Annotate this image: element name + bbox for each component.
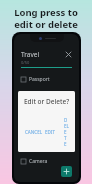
- button[interactable]: Add item: [61, 166, 72, 177]
- staticText: Edit or Delete?: [24, 97, 70, 106]
- staticText: DELETE: [64, 117, 69, 147]
- staticText: Long press to edit or delete: [0, 6, 92, 31]
- button[interactable]: Camera: [14, 157, 79, 166]
- button[interactable]: Passport: [14, 75, 79, 84]
- button[interactable]: EDIT: [44, 128, 56, 136]
- staticText: EDIT: [45, 129, 55, 135]
- staticText: 0/50: [21, 60, 30, 65]
- button[interactable]: DELETE: [63, 116, 70, 148]
- staticText: CANCEL: [25, 129, 43, 135]
- button[interactable]: CANCEL: [24, 128, 44, 136]
- button[interactable]: Close: [63, 49, 73, 59]
- staticText: Passport: [29, 76, 50, 83]
- staticText: Camera: [29, 158, 48, 165]
- staticText: Travel: [21, 50, 40, 59]
